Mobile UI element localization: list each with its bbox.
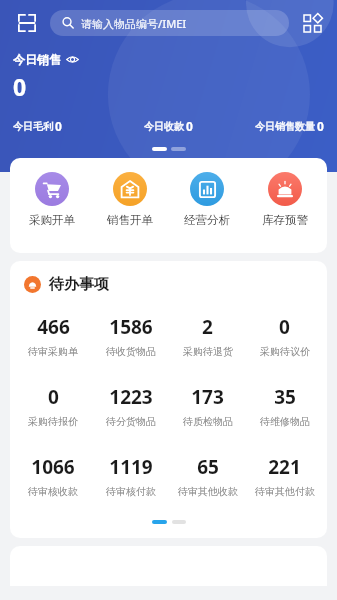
- staticText: 采购待议价: [260, 345, 310, 358]
- button[interactable]: 1586: [92, 314, 169, 358]
- staticText: 采购待报价: [28, 415, 78, 428]
- staticText: 待收货物品: [106, 345, 156, 358]
- staticText: 待审其他付款: [255, 485, 315, 498]
- staticText: 今日收款: [144, 120, 184, 133]
- button[interactable]: More apps: [299, 10, 325, 36]
- button[interactable]: 今日收款: [116, 118, 220, 134]
- button[interactable]: 0: [246, 314, 323, 358]
- staticText: 466: [37, 314, 70, 340]
- staticText: 221: [268, 454, 301, 480]
- staticText: 待审核收款: [28, 485, 78, 498]
- button[interactable]: 1066: [14, 454, 92, 498]
- staticText: 待维修物品: [260, 415, 310, 428]
- staticText: 今日销售: [13, 52, 61, 67]
- staticText: 待审其他收款: [178, 485, 238, 498]
- staticText: 1223: [109, 384, 153, 410]
- staticText: 采购待退货: [183, 345, 233, 358]
- button[interactable]: 2: [169, 314, 246, 358]
- staticText: 2: [202, 314, 213, 340]
- staticText: 0: [279, 314, 290, 340]
- staticText: 173: [191, 384, 224, 410]
- staticText: 待办事项: [49, 275, 109, 294]
- button[interactable]: Scan barcode: [12, 8, 42, 38]
- staticText: 0: [186, 118, 193, 134]
- staticText: 0: [48, 384, 59, 410]
- staticText: 0: [317, 118, 324, 134]
- staticText: 35: [274, 384, 296, 410]
- staticText: 0: [13, 71, 27, 102]
- staticText: 库存预警: [262, 213, 308, 227]
- button[interactable]: 173: [169, 384, 246, 428]
- staticText: 0: [55, 118, 62, 134]
- staticText: 1066: [31, 454, 75, 480]
- staticText: 今日销售数量: [255, 120, 315, 133]
- staticText: 今日毛利: [13, 120, 53, 133]
- staticText: 1119: [109, 454, 153, 480]
- staticText: 65: [197, 454, 219, 480]
- button[interactable]: Toggle visibility: [66, 53, 79, 66]
- button[interactable]: 销售开单: [94, 172, 166, 227]
- button[interactable]: 采购开单: [16, 172, 88, 227]
- staticText: 销售开单: [107, 213, 153, 227]
- button[interactable]: 请输入物品编号/IMEI: [50, 10, 289, 36]
- staticText: 待质检物品: [183, 415, 233, 428]
- button[interactable]: 221: [246, 454, 323, 498]
- staticText: 1586: [109, 314, 153, 340]
- button[interactable]: 今日毛利: [13, 118, 116, 134]
- staticText: 待分货物品: [106, 415, 156, 428]
- staticText: 采购开单: [29, 213, 75, 227]
- staticText: 待审采购单: [28, 345, 78, 358]
- button[interactable]: 1223: [92, 384, 169, 428]
- button[interactable]: 今日销售数量: [220, 118, 324, 134]
- staticText: 待审核付款: [106, 485, 156, 498]
- staticText: 请输入物品编号/IMEI: [81, 16, 187, 31]
- button[interactable]: 0: [14, 384, 92, 428]
- button[interactable]: 1119: [92, 454, 169, 498]
- button[interactable]: 65: [169, 454, 246, 498]
- staticText: 经营分析: [184, 213, 230, 227]
- button[interactable]: 35: [246, 384, 323, 428]
- button[interactable]: 库存预警: [249, 172, 321, 227]
- button[interactable]: 466: [14, 314, 92, 358]
- button[interactable]: 经营分析: [171, 172, 243, 227]
